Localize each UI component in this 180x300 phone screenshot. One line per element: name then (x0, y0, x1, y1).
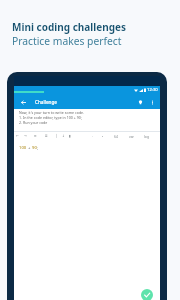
staticText: ≣ (45, 134, 48, 138)
button[interactable]: More options (146, 96, 158, 108)
staticText: Mini coding challenges (12, 20, 127, 34)
button[interactable]: Hint (134, 96, 146, 108)
staticText: • (102, 134, 104, 139)
button[interactable]: Back (16, 95, 30, 109)
button[interactable]: Run code (141, 289, 153, 300)
staticText: ← (16, 134, 19, 138)
staticText: ▮ (69, 134, 71, 138)
staticText: 64 (114, 134, 118, 139)
staticText: 1. In the code editor, type in 100 + 90; (19, 115, 82, 120)
button[interactable]: 64 (114, 132, 118, 140)
staticText: 100 (19, 145, 27, 151)
button[interactable]: ≡ (34, 132, 37, 140)
staticText: Challenge (35, 99, 57, 105)
staticText: │ (55, 134, 58, 138)
button[interactable]: ≣ (45, 132, 48, 140)
staticText: var (129, 134, 135, 139)
button[interactable]: ← (16, 132, 19, 140)
staticText: + (27, 145, 32, 151)
staticText: → (24, 134, 27, 138)
staticText: ≡ (34, 134, 37, 138)
button[interactable]: ↓ (62, 132, 65, 140)
button[interactable]: var (129, 132, 135, 140)
button[interactable]: log (144, 132, 150, 140)
staticText: 2. Run your code (19, 120, 48, 125)
staticText: 90 (32, 145, 37, 151)
button[interactable]: │ (55, 132, 58, 140)
staticText: ; (37, 145, 39, 151)
staticText: Now, it's your turn to write some code. (19, 110, 85, 115)
button[interactable]: → (24, 132, 27, 140)
staticText: Practice makes perfect (12, 34, 122, 48)
staticText: ↓ (62, 134, 65, 138)
staticText: log (144, 134, 150, 139)
button[interactable]: · (92, 132, 93, 140)
staticText: 12:30 (147, 87, 158, 93)
button[interactable]: ▮ (69, 132, 71, 140)
button[interactable]: • (102, 132, 104, 140)
staticText: · (92, 134, 93, 139)
